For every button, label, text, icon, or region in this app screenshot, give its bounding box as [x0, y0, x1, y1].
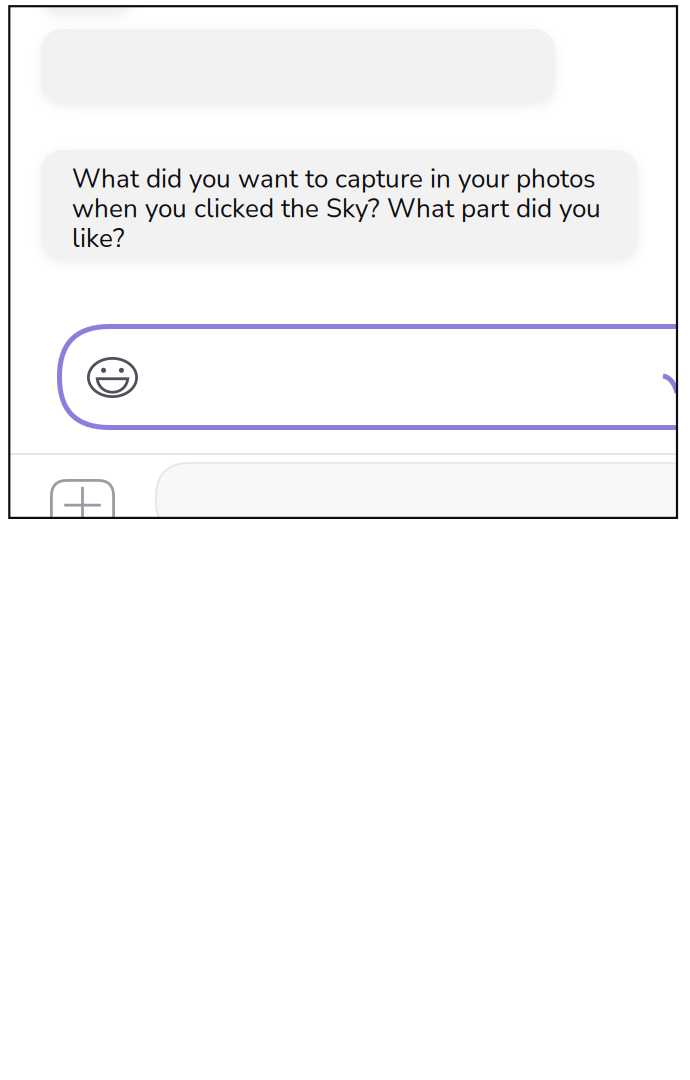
button[interactable]: Emoji	[87, 357, 138, 398]
staticText: What did you want to capture in your pho…	[72, 164, 601, 253]
button[interactable]: What did you want to capture in your pho…	[41, 150, 638, 259]
button[interactable]: Type a message	[155, 462, 690, 536]
button[interactable]: Message input	[57, 324, 690, 430]
button[interactable]: Add attachment	[50, 479, 115, 544]
